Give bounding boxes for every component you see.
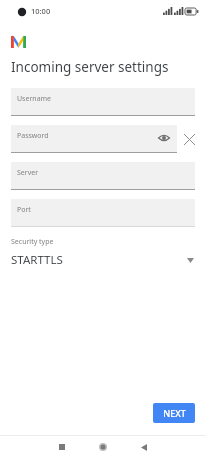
button[interactable]: Show password <box>156 130 172 146</box>
staticText: Security type <box>11 237 54 247</box>
staticText: Username <box>17 94 52 104</box>
button[interactable]: Back <box>134 437 154 457</box>
button[interactable]: Clear password <box>180 130 198 148</box>
staticText: Server <box>17 168 39 178</box>
button[interactable]: NEXT <box>153 403 195 423</box>
staticText: 10:00 <box>31 6 51 16</box>
button[interactable]: Home <box>93 437 113 457</box>
staticText: Incoming server settings <box>11 58 169 76</box>
button[interactable]: Security type <box>0 236 206 270</box>
staticText: STARTTLS <box>11 252 185 268</box>
staticText: Password <box>17 131 49 141</box>
staticText: Port <box>17 205 31 215</box>
button[interactable]: Recents <box>52 437 72 457</box>
staticText: NEXT <box>163 407 186 419</box>
button[interactable]: Username <box>11 88 195 116</box>
button[interactable]: Port <box>11 199 195 227</box>
button[interactable]: Password <box>11 125 177 153</box>
button[interactable]: Server <box>11 162 195 190</box>
